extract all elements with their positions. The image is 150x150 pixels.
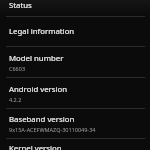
- staticText: 9x15A-ACEFWMAZQ-30110049-34: [9, 126, 96, 133]
- button[interactable]: Model number: [0, 47, 150, 77]
- staticText: Legal information: [9, 26, 75, 37]
- button[interactable]: Kernel version: [0, 139, 150, 150]
- button[interactable]: Legal information: [0, 17, 150, 46]
- button[interactable]: Baseband version: [0, 109, 150, 138]
- button[interactable]: Android version: [0, 78, 150, 108]
- staticText: Baseband version: [9, 114, 75, 125]
- staticText: C6603: [9, 65, 26, 72]
- staticText: Model number: [9, 53, 64, 64]
- button[interactable]: Status: [0, 0, 150, 16]
- staticText: Android version: [9, 84, 68, 95]
- staticText: 4.2.2: [9, 96, 22, 103]
- staticText: Kernel version: [9, 143, 62, 150]
- staticText: Status: [9, 0, 32, 11]
